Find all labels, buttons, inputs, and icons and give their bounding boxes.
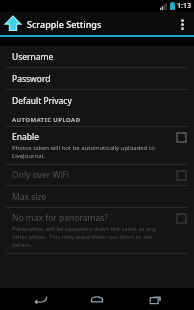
button[interactable]: Only over WiFi <box>0 165 194 185</box>
button[interactable]: Enable <box>0 127 194 164</box>
button[interactable]: Username <box>0 46 194 67</box>
staticText: Username <box>12 51 54 63</box>
staticText: No max for panoramas? <box>12 212 109 224</box>
button[interactable]: Recent apps <box>137 288 173 310</box>
button[interactable]: Up <box>4 15 22 33</box>
staticText: Photos taken will not be automatically u… <box>12 144 173 160</box>
button[interactable]: Home <box>79 288 115 310</box>
staticText: Panoramas will be squeezed down the same… <box>12 225 173 249</box>
staticText: AUTOMATIC UPLOAD <box>12 116 81 124</box>
button[interactable]: More options <box>174 16 190 32</box>
other: Only over WiFi <box>177 171 186 180</box>
staticText: Only over WiFi <box>12 169 70 181</box>
other: Enable <box>177 133 186 142</box>
button[interactable]: Default Privacy <box>0 90 194 111</box>
button[interactable]: No max for panoramas? <box>0 208 194 253</box>
staticText: Scrapple Settings <box>27 18 174 30</box>
other: No max for panoramas? <box>177 214 186 223</box>
staticText: Password <box>12 73 51 85</box>
staticText: Enable <box>12 131 39 143</box>
staticText: Max size <box>12 191 47 203</box>
button[interactable]: Max size <box>0 186 194 207</box>
button[interactable]: Back <box>22 288 58 310</box>
staticText: 1:13 <box>177 1 191 11</box>
staticText: Default Privacy <box>12 95 72 107</box>
button[interactable]: Password <box>0 68 194 89</box>
